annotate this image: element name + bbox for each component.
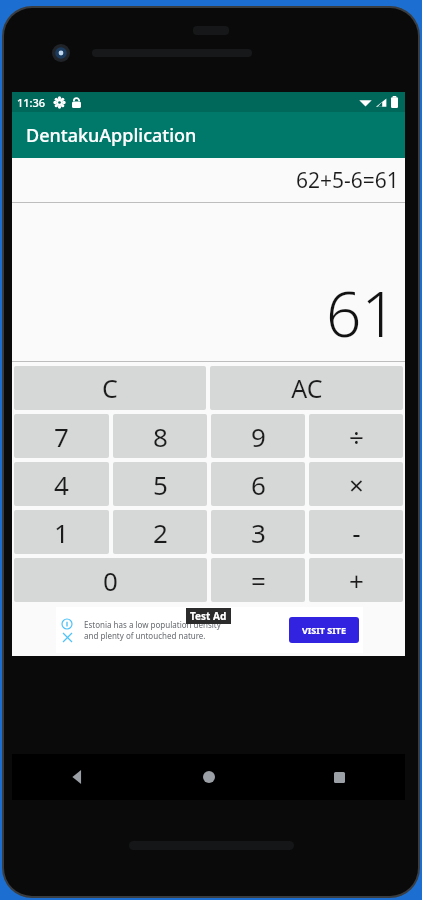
staticText: 4: [54, 467, 69, 502]
staticText: and plenty of untouched nature.: [84, 630, 206, 641]
staticText: C: [102, 371, 118, 405]
button[interactable]: +: [309, 558, 403, 602]
staticText: 11:36: [17, 95, 46, 110]
staticText: 0: [103, 563, 118, 598]
staticText: -: [352, 515, 361, 550]
button[interactable]: 0: [14, 558, 207, 602]
staticText: ×: [349, 467, 364, 502]
staticText: Estonia has a low population density: [84, 619, 221, 630]
staticText: =: [251, 563, 266, 598]
staticText: ÷: [349, 419, 364, 454]
button[interactable]: 1: [14, 510, 109, 554]
button[interactable]: 7: [14, 414, 109, 458]
staticText: 61: [326, 271, 397, 355]
button[interactable]: C: [14, 366, 206, 410]
button[interactable]: Recent apps: [274, 754, 405, 800]
button[interactable]: 9: [211, 414, 305, 458]
staticText: 6: [251, 467, 266, 502]
staticText: +: [349, 563, 364, 598]
button[interactable]: ×: [309, 462, 403, 506]
button[interactable]: VISIT SITE: [289, 617, 359, 643]
button[interactable]: Home: [143, 754, 274, 800]
button[interactable]: Back: [12, 754, 143, 800]
button[interactable]: 8: [113, 414, 207, 458]
staticText: Test Ad: [190, 609, 227, 623]
staticText: 1: [54, 515, 69, 550]
staticText: 2: [153, 515, 168, 550]
staticText: DentakuApplication: [26, 123, 197, 148]
button[interactable]: 2: [113, 510, 207, 554]
button[interactable]: -: [309, 510, 403, 554]
staticText: AC: [291, 371, 323, 405]
button[interactable]: Estonia has a low population density: [56, 607, 363, 653]
button[interactable]: ÷: [309, 414, 403, 458]
staticText: 8: [153, 419, 168, 454]
button[interactable]: 6: [211, 462, 305, 506]
staticText: 5: [153, 467, 168, 502]
staticText: 7: [54, 419, 69, 454]
staticText: VISIT SITE: [302, 624, 347, 636]
button[interactable]: =: [211, 558, 305, 602]
staticText: 9: [251, 419, 266, 454]
button[interactable]: 4: [14, 462, 109, 506]
button[interactable]: 5: [113, 462, 207, 506]
staticText: 3: [251, 515, 266, 550]
staticText: 62+5-6=61: [296, 166, 399, 195]
button[interactable]: AC: [210, 366, 403, 410]
button[interactable]: 3: [211, 510, 305, 554]
